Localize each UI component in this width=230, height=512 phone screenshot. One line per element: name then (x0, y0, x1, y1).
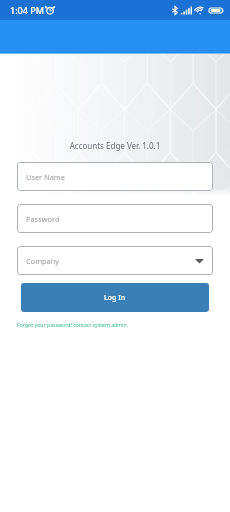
button[interactable]: Company (17, 246, 213, 275)
staticText: Accounts Edge Ver. 1.0.1 (0, 140, 230, 151)
staticText: Password (26, 214, 60, 224)
staticText: Log In (104, 293, 126, 303)
button[interactable]: User Name (17, 162, 213, 191)
button[interactable]: Log In (21, 283, 209, 312)
staticText: 1:04 PM (10, 4, 44, 16)
button[interactable]: Forgot your password! contact system adm… (17, 321, 127, 328)
staticText: User Name (26, 172, 65, 182)
staticText: Company (26, 256, 60, 266)
other: Select company (195, 258, 204, 264)
button[interactable]: Password (17, 204, 213, 233)
